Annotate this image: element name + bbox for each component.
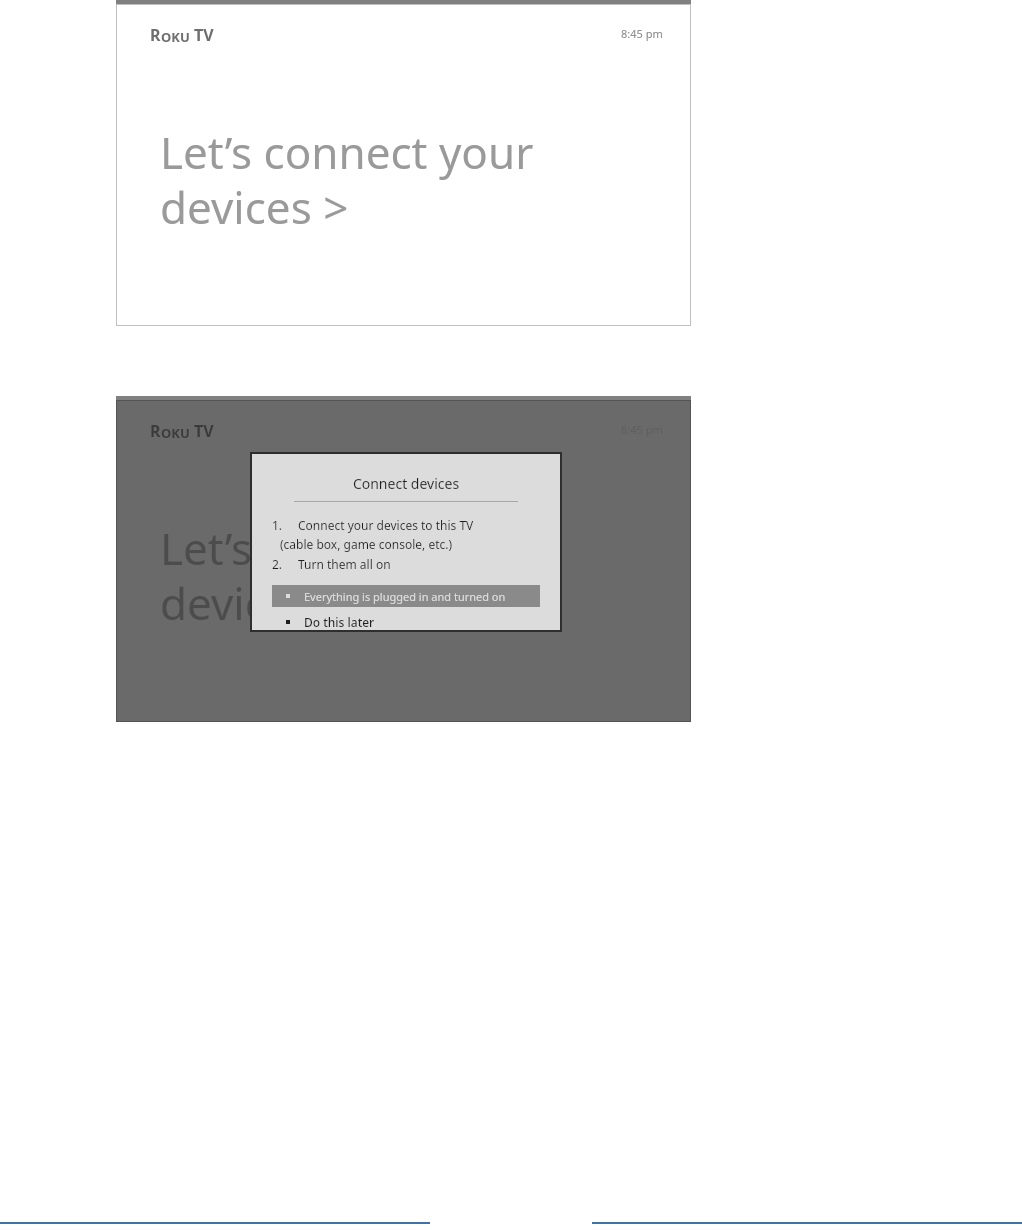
staticText: 1.: [272, 517, 298, 533]
staticText: 2.: [272, 556, 298, 572]
staticText: Turn them all on: [298, 556, 391, 572]
staticText: R: [150, 24, 161, 46]
staticText: 8:45 pm: [621, 26, 663, 41]
button[interactable]: Everything is plugged in and turned on: [272, 585, 540, 607]
button[interactable]: Let’s connect your devices >: [160, 122, 691, 237]
staticText: (cable box, game console, etc.): [280, 536, 453, 552]
staticText: Connect devices: [252, 474, 560, 493]
staticText: Do this later: [304, 614, 375, 630]
staticText: Connect your devices to this TV: [298, 517, 474, 533]
staticText: R: [150, 420, 161, 442]
staticText: Everything is plugged in and turned on: [304, 589, 506, 604]
staticText: 8:45 pm: [621, 422, 663, 437]
staticText: Let’s connect your devices >: [160, 518, 691, 633]
staticText: OKU: [161, 28, 190, 46]
staticText: Let’s connect your devices >: [160, 122, 691, 237]
staticText: TV: [194, 24, 214, 46]
staticText: TV: [194, 420, 214, 442]
button[interactable]: Do this later: [272, 614, 540, 630]
staticText: OKU: [161, 424, 190, 442]
